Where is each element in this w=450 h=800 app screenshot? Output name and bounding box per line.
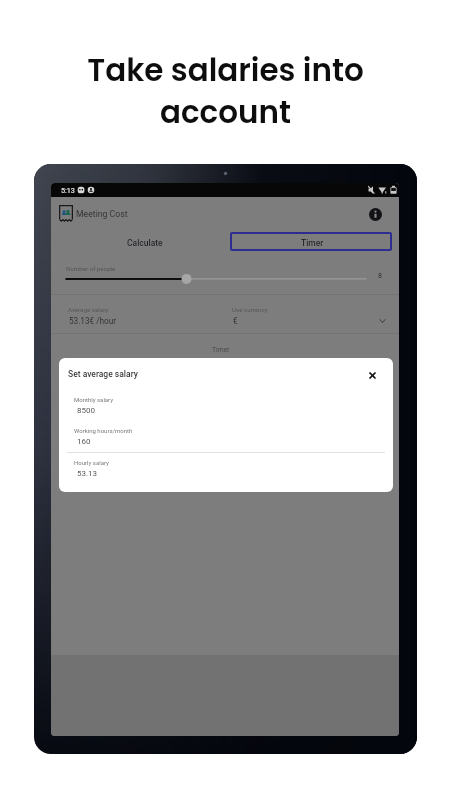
staticText: Use currency	[232, 306, 268, 313]
staticText: Average salary	[68, 306, 109, 313]
staticText: Number of people	[66, 265, 116, 272]
button[interactable]: Timer	[230, 232, 392, 251]
staticText: Working hours/month	[74, 427, 133, 434]
staticText: Meeting Cost	[76, 209, 128, 219]
staticText: Hourly salary	[74, 459, 109, 466]
staticText: Monthly salary	[74, 396, 114, 403]
staticText: Timer	[301, 238, 324, 248]
staticText: 8	[378, 272, 382, 280]
staticText: €	[233, 316, 238, 326]
button[interactable]: Close dialog	[363, 366, 382, 385]
staticText: 160	[77, 437, 91, 446]
staticText: 5:13	[61, 186, 75, 194]
staticText: Take salaries into account	[87, 48, 364, 134]
button[interactable]: Calculate	[58, 232, 228, 251]
staticText: Timer	[212, 346, 230, 354]
button[interactable]: Info	[365, 204, 385, 224]
staticText: Set average salary	[68, 369, 138, 379]
staticText: 8500	[77, 406, 95, 415]
staticText: 53.13€ /hour	[69, 316, 117, 326]
staticText: 53.13	[77, 469, 98, 478]
staticText: Calculate	[127, 238, 163, 248]
